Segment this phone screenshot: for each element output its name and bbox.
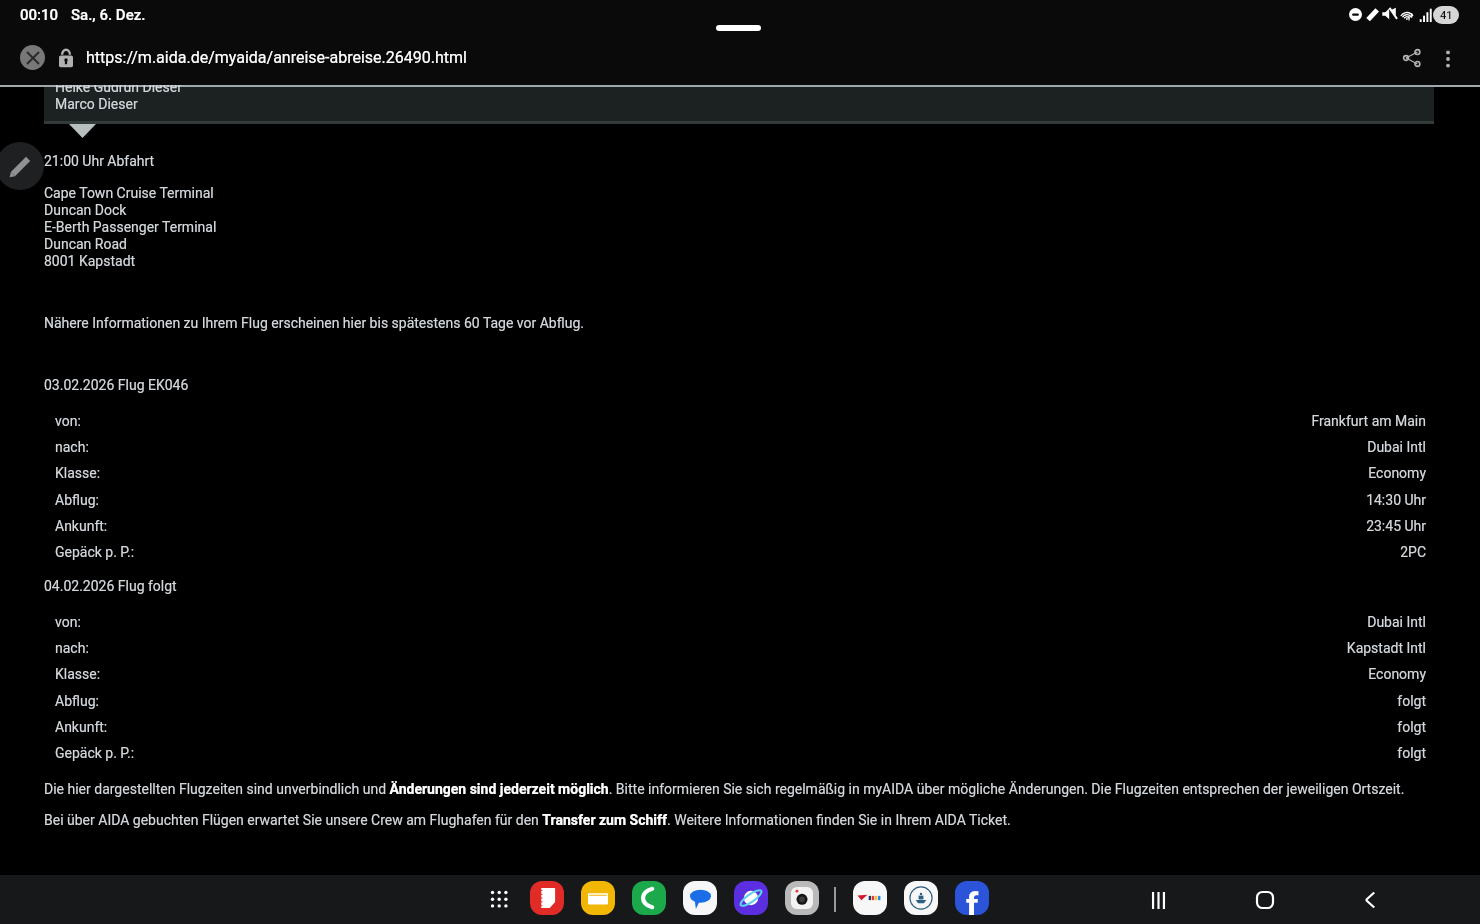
staticText: E-Berth Passenger Terminal xyxy=(44,219,217,235)
button[interactable]: Camera xyxy=(785,881,819,915)
staticText: von: xyxy=(55,614,81,630)
staticText: 2PC xyxy=(1000,544,1426,560)
staticText: 21:00 Uhr Abfahrt xyxy=(44,153,155,169)
staticText: 23:45 Uhr xyxy=(1000,518,1426,534)
staticText: von: xyxy=(55,413,81,429)
button[interactable]: myAIDA xyxy=(904,881,938,915)
staticText: Abflug: xyxy=(55,693,99,709)
button[interactable]: Samsung Internet xyxy=(734,881,768,915)
button[interactable]: Facebook xyxy=(955,881,989,915)
staticText: 8001 Kapstadt xyxy=(44,253,136,269)
staticText: Duncan Dock xyxy=(44,202,127,218)
button[interactable]: Apps xyxy=(483,883,515,915)
staticText: Ankunft: xyxy=(55,719,108,735)
staticText: 00:10 xyxy=(20,6,59,24)
button[interactable]: More options xyxy=(1430,41,1466,77)
staticText: Frankfurt am Main xyxy=(1000,413,1426,429)
staticText: Ankunft: xyxy=(55,518,108,534)
button[interactable]: Home xyxy=(1243,878,1287,922)
button[interactable]: Phone xyxy=(632,881,666,915)
staticText: Dubai Intl xyxy=(1000,439,1426,455)
staticText: folgt xyxy=(1000,719,1426,735)
button[interactable]: Messages xyxy=(683,881,717,915)
staticText: nach: xyxy=(55,439,89,455)
staticText: Economy xyxy=(1000,666,1426,682)
staticText: Klasse: xyxy=(55,666,101,682)
staticText: Duncan Road xyxy=(44,236,127,252)
staticText: f xyxy=(966,885,979,915)
staticText: Nähere Informationen zu Ihrem Flug ersch… xyxy=(44,315,584,331)
staticText: folgt xyxy=(1000,693,1426,709)
staticText: 41 xyxy=(1440,9,1453,22)
button[interactable]: Recents xyxy=(1136,878,1180,922)
staticText: https://m.aida.de/myaida/anreise-abreise… xyxy=(86,48,467,67)
staticText: Gepäck p. P.: xyxy=(55,745,135,761)
staticText: Dubai Intl xyxy=(1000,614,1426,630)
staticText: Die hier dargestellten Flugzeiten sind u… xyxy=(44,781,1405,797)
staticText: Gepäck p. P.: xyxy=(55,544,135,560)
button[interactable]: AIDA xyxy=(853,881,887,915)
staticText: folgt xyxy=(1000,745,1426,761)
staticText: Economy xyxy=(1000,465,1426,481)
button[interactable]: Samsung Notes xyxy=(530,881,564,915)
staticText: Heike Gudrun Dieser xyxy=(55,79,182,95)
staticText: Klasse: xyxy=(55,465,101,481)
staticText: 04.02.2026 Flug folgt xyxy=(44,578,177,594)
button[interactable]: Back xyxy=(1349,878,1393,922)
button[interactable]: Edit xyxy=(0,142,44,190)
button[interactable]: My Files xyxy=(581,881,615,915)
staticText: Bei über AIDA gebuchten Flügen erwartet … xyxy=(44,812,1011,828)
staticText: Kapstadt Intl xyxy=(1000,640,1426,656)
staticText: Abflug: xyxy=(55,492,99,508)
staticText: Sa., 6. Dez. xyxy=(71,6,146,24)
staticText: Cape Town Cruise Terminal xyxy=(44,185,214,201)
staticText: nach: xyxy=(55,640,89,656)
button[interactable]: Share xyxy=(1394,40,1430,76)
staticText: 14:30 Uhr xyxy=(1000,492,1426,508)
staticText: 03.02.2026 Flug EK046 xyxy=(44,377,189,393)
staticText: Marco Dieser xyxy=(55,96,138,112)
button[interactable]: Close tab xyxy=(20,45,45,70)
